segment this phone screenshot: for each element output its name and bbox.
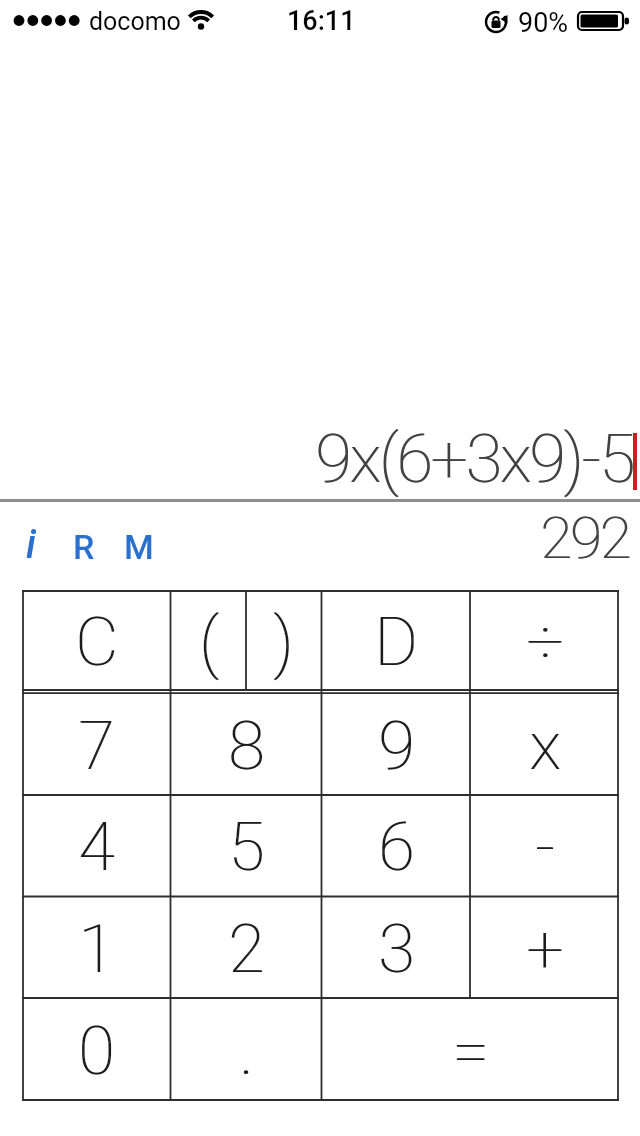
staticText: 2 xyxy=(229,911,266,988)
staticText: 9x(6+3x9)-5 xyxy=(315,421,633,498)
staticText: D xyxy=(374,604,418,681)
staticText: . xyxy=(239,1013,254,1090)
staticText: 6 xyxy=(378,809,415,886)
button[interactable]: - xyxy=(470,795,619,896)
staticText: - xyxy=(536,809,556,886)
staticText: docomo xyxy=(89,7,181,36)
button[interactable]: 3 xyxy=(322,896,470,998)
button[interactable]: = xyxy=(322,998,619,1100)
staticText: = xyxy=(453,1013,490,1090)
button[interactable]: ) xyxy=(246,590,321,690)
staticText: 0 xyxy=(79,1013,116,1090)
staticText: 5 xyxy=(229,809,266,886)
staticText: ÷ xyxy=(527,604,565,681)
button[interactable]: 1 xyxy=(22,896,170,998)
button[interactable]: R xyxy=(73,527,95,567)
staticText: 0 xyxy=(78,1013,115,1090)
button[interactable]: 0 xyxy=(22,998,170,1100)
staticText: D xyxy=(375,604,419,681)
staticText: 3 xyxy=(378,911,415,988)
button[interactable]: x xyxy=(470,693,619,795)
staticText: 16:11 xyxy=(287,5,356,37)
button[interactable]: 2 xyxy=(171,896,321,998)
staticText: C xyxy=(76,604,119,681)
button[interactable]: 9 xyxy=(322,693,470,795)
staticText: ( xyxy=(200,604,220,681)
staticText: 8 xyxy=(229,708,266,785)
staticText: + xyxy=(527,911,565,988)
button[interactable]: 5 xyxy=(171,795,321,896)
staticText: 1 xyxy=(79,911,116,988)
staticText: 8 xyxy=(228,708,265,785)
staticText: 7 xyxy=(78,708,115,785)
staticText: 9 xyxy=(379,708,416,785)
button[interactable]: D xyxy=(322,590,470,690)
staticText: 90% xyxy=(518,7,569,39)
staticText: 292 xyxy=(541,504,631,572)
staticText: ÷ xyxy=(526,604,564,681)
button[interactable]: . xyxy=(171,998,321,1100)
staticText: 2 xyxy=(228,911,265,988)
button[interactable]: ÷ xyxy=(470,590,619,690)
staticText: C xyxy=(75,604,118,681)
staticText: 292 xyxy=(540,504,630,572)
staticText: 9 xyxy=(378,708,415,785)
staticText: . xyxy=(240,1013,255,1090)
staticText: x xyxy=(530,708,562,785)
staticText: 9x(6+3x9)-5 xyxy=(316,421,634,498)
staticText: 4 xyxy=(78,809,115,886)
staticText: ) xyxy=(273,604,294,681)
staticText: 3 xyxy=(379,911,416,988)
staticText: ( xyxy=(199,604,219,681)
staticText: 5 xyxy=(228,809,265,886)
staticText: 6 xyxy=(379,809,416,886)
button[interactable]: M xyxy=(124,527,154,567)
button[interactable]: 6 xyxy=(322,795,470,896)
staticText: 4 xyxy=(79,809,116,886)
button[interactable]: 4 xyxy=(22,795,170,896)
button[interactable]: C xyxy=(22,590,170,690)
button[interactable]: + xyxy=(470,896,619,998)
staticText: 7 xyxy=(79,708,116,785)
staticText: 1 xyxy=(78,911,115,988)
button[interactable]: 7 xyxy=(22,693,170,795)
staticText: + xyxy=(526,911,564,988)
staticText: - xyxy=(535,809,555,886)
staticText: = xyxy=(452,1013,489,1090)
button[interactable]: i xyxy=(26,521,36,568)
staticText: ) xyxy=(274,604,295,681)
staticText: x xyxy=(529,708,561,785)
button[interactable]: ( xyxy=(171,590,246,690)
button[interactable]: 8 xyxy=(171,693,321,795)
